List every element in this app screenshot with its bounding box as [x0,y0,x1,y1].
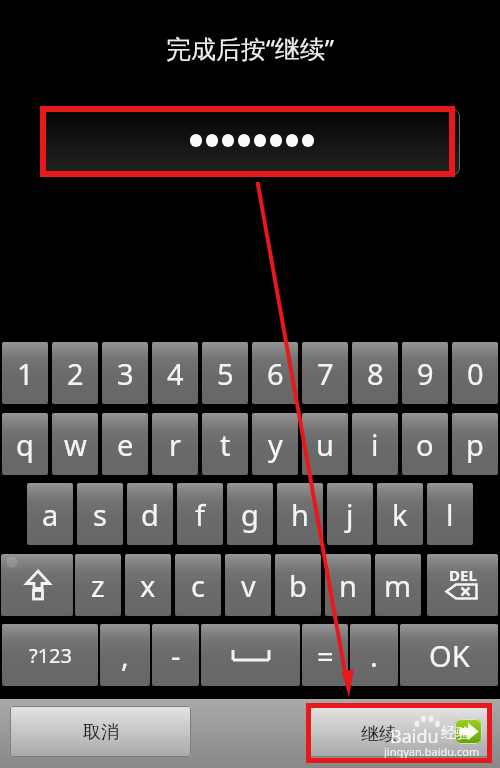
button[interactable]: 取消 [10,706,191,757]
staticText: 完成后按“继续” [166,31,334,65]
button[interactable]: g [227,483,273,545]
button[interactable]: 9 [402,342,448,404]
staticText: u [316,425,334,464]
button[interactable]: 5 [202,342,248,404]
staticText: n [339,566,357,605]
staticText: 4 [167,354,184,393]
button[interactable]: 7 [302,342,348,404]
staticText: 继续 [361,723,397,746]
button[interactable]: y [252,413,298,475]
button[interactable]: o [402,413,448,475]
button[interactable]: Shift [1,554,73,616]
staticText: - [171,636,181,675]
button[interactable]: Delete [427,554,498,616]
staticText: s [93,495,107,534]
staticText: p [466,425,484,464]
button[interactable]: b [275,554,321,616]
button[interactable]: q [2,413,48,475]
staticText: 5 [217,354,234,393]
staticText: w [64,425,87,464]
button[interactable]: Space [201,624,300,686]
button[interactable]: 0 [452,342,498,404]
staticText: z [91,566,105,605]
staticText: e [117,425,134,464]
staticText: 1 [17,354,34,393]
button[interactable]: f [177,483,223,545]
button[interactable] [44,108,460,176]
staticText: i [371,425,379,464]
button[interactable]: s [77,483,123,545]
staticText: x [140,566,156,605]
button[interactable]: 继续 [309,706,489,757]
button[interactable]: 2 [52,342,98,404]
staticText: DEL [449,565,477,585]
button[interactable]: x [125,554,171,616]
staticText: h [291,495,309,534]
button[interactable]: 4 [152,342,198,404]
staticText: = [317,636,334,675]
button[interactable]: 6 [252,342,298,404]
button[interactable]: k [377,483,423,545]
button[interactable]: , [100,624,150,686]
button[interactable]: d [127,483,173,545]
button[interactable]: w [52,413,98,475]
staticText: . [370,636,378,675]
button[interactable]: r [152,413,198,475]
staticText: a [42,495,59,534]
staticText: k [392,495,408,534]
staticText: 9 [417,354,434,393]
button[interactable]: l [427,483,473,545]
button[interactable]: = [302,624,348,686]
staticText: m [384,566,412,605]
staticText: d [141,495,159,534]
button[interactable]: 1 [2,342,48,404]
button[interactable]: OK [400,624,498,686]
button[interactable]: 3 [102,342,148,404]
staticText: y [268,425,283,464]
button[interactable]: i [352,413,398,475]
staticText: 6 [267,354,284,393]
staticText: t [220,425,231,464]
button[interactable]: p [452,413,498,475]
staticText: 经验 [441,724,471,743]
staticText: OK [429,636,470,675]
staticText: , [121,636,129,675]
button[interactable]: . [350,624,398,686]
staticText: r [169,425,181,464]
button[interactable]: n [325,554,371,616]
button[interactable]: 8 [352,342,398,404]
staticText: 3 [117,354,134,393]
button[interactable]: a [27,483,73,545]
button[interactable]: ?123 [2,624,98,686]
staticText: g [241,495,259,534]
button[interactable]: j [327,483,373,545]
staticText: f [195,495,205,534]
staticText: q [16,425,34,464]
button[interactable]: e [102,413,148,475]
button[interactable]: u [302,413,348,475]
staticText: Baidu [390,724,439,749]
button[interactable]: v [225,554,271,616]
button[interactable]: - [152,624,199,686]
button[interactable]: m [375,554,421,616]
staticText: 取消 [83,721,119,744]
staticText: l [446,495,454,534]
staticText: jingyan.baidu.com [384,744,480,759]
staticText: 0 [467,354,484,393]
button[interactable]: t [202,413,248,475]
staticText: ?123 [29,642,72,669]
button[interactable]: h [277,483,323,545]
button[interactable]: z [75,554,121,616]
staticText: v [241,566,256,605]
staticText: o [416,425,434,464]
staticText: j [346,495,354,534]
staticText: 8 [367,354,384,393]
staticText: 2 [67,354,84,393]
staticText: 7 [317,354,334,393]
staticText: b [289,566,307,605]
button[interactable]: c [175,554,221,616]
staticText: c [191,566,205,605]
